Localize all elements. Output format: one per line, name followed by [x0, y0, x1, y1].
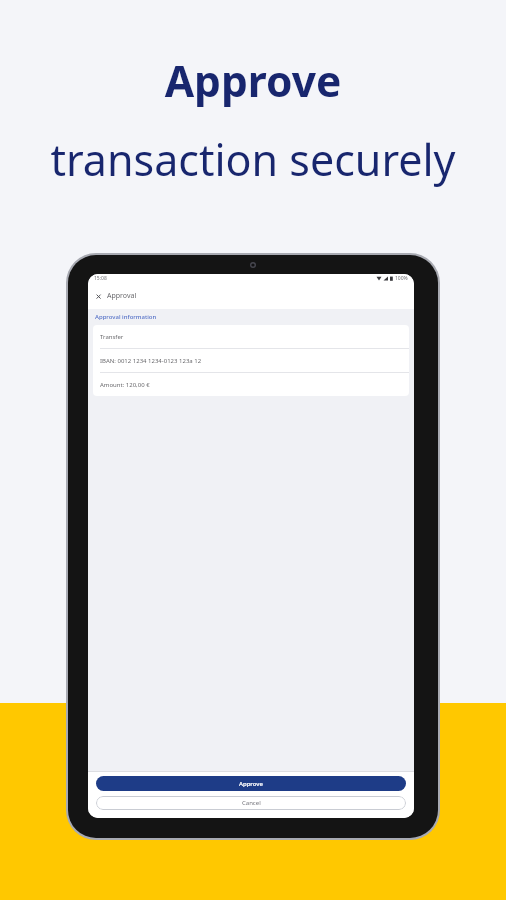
button[interactable]: Approve [96, 776, 406, 791]
staticText: transaction securely [0, 130, 506, 189]
staticText: Approve [0, 52, 506, 110]
button[interactable]: Approval [88, 289, 137, 303]
button[interactable]: IBAN: 0012 1234 1234-0123 123a 12 [93, 349, 409, 372]
staticText: Cancel [242, 799, 261, 807]
staticText: IBAN: 0012 1234 1234-0123 123a 12 [100, 357, 202, 365]
staticText: Approve [239, 780, 263, 788]
staticText: Amount: 120,00 € [100, 381, 150, 389]
button[interactable]: Amount: 120,00 € [93, 373, 409, 396]
staticText: 15:08 [94, 275, 107, 282]
button[interactable]: Cancel [96, 796, 406, 810]
button[interactable]: Transfer [93, 325, 409, 348]
staticText: Approval information [95, 313, 157, 321]
staticText: Approval [107, 291, 137, 301]
staticText: Transfer [100, 333, 124, 341]
staticText: 100% [395, 275, 408, 282]
